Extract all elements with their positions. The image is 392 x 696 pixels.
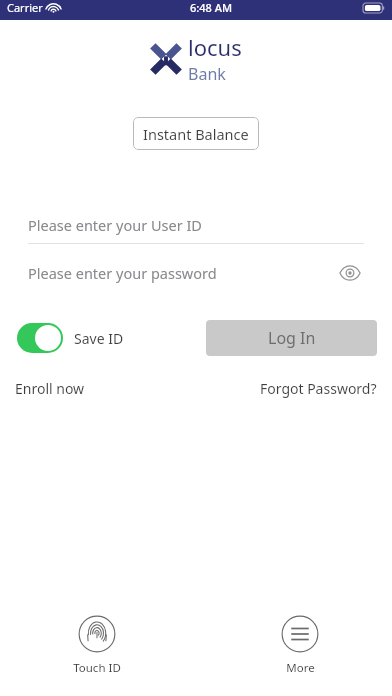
staticText: Enroll now <box>15 379 85 398</box>
staticText: Please enter your User ID <box>28 215 202 235</box>
staticText: Bank <box>188 63 226 85</box>
staticText: More <box>286 660 315 676</box>
staticText: Save ID <box>74 329 124 348</box>
button[interactable]: Forgot Password? <box>260 379 377 398</box>
button[interactable]: Please enter your password <box>0 255 392 291</box>
button[interactable]: More <box>277 611 323 680</box>
button[interactable]: Show password <box>336 259 364 287</box>
staticText: Log In <box>268 327 316 349</box>
button[interactable]: Instant Balance <box>133 117 259 150</box>
staticText: Forgot Password? <box>260 379 377 398</box>
staticText: Please enter your password <box>28 263 336 283</box>
button[interactable]: Enroll now <box>15 379 85 398</box>
staticText: locus <box>188 32 242 62</box>
button[interactable]: Save ID toggle <box>17 323 124 353</box>
staticText: 6:48 AM <box>190 0 233 15</box>
button[interactable]: Please enter your User ID <box>0 207 392 243</box>
button[interactable]: Touch ID <box>69 611 125 680</box>
staticText: Carrier <box>7 0 43 15</box>
button[interactable]: Log In <box>206 320 377 356</box>
other: Save ID toggle <box>17 323 63 353</box>
staticText: Touch ID <box>73 660 121 676</box>
staticText: Instant Balance <box>143 124 249 144</box>
